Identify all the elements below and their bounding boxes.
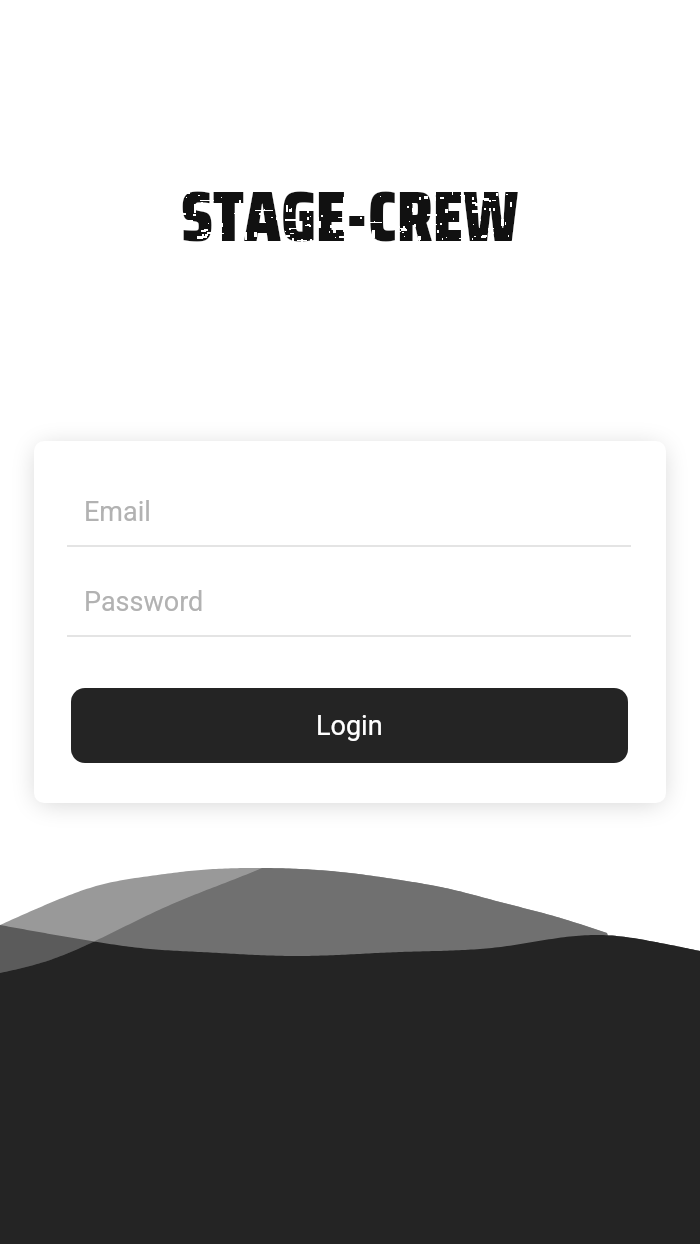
button[interactable]: Email — [67, 493, 631, 547]
staticText: Email — [84, 496, 151, 528]
staticText: Login — [316, 710, 383, 742]
button[interactable]: Password — [67, 583, 631, 637]
staticText: Password — [84, 586, 204, 618]
button[interactable]: Login — [71, 688, 628, 763]
